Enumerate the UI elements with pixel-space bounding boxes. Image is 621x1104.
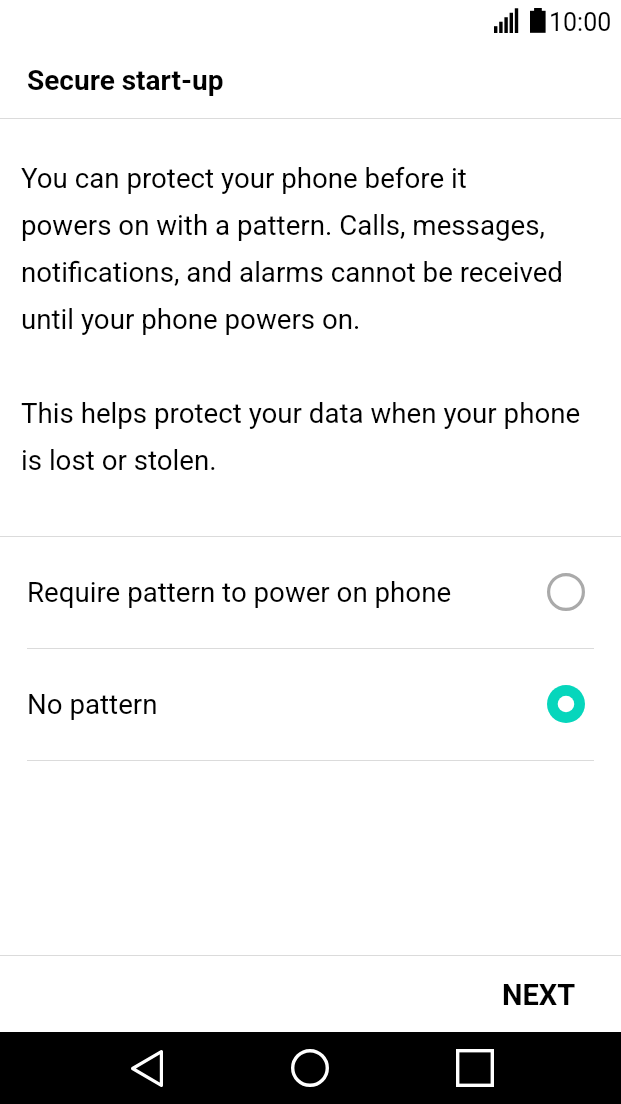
button[interactable]: No pattern bbox=[0, 649, 621, 760]
button[interactable]: NEXT bbox=[478, 963, 621, 1025]
staticText: 10:00 bbox=[549, 8, 612, 37]
button[interactable]: Require pattern to power on phone bbox=[0, 537, 621, 648]
staticText: You can protect your phone before it pow… bbox=[21, 151, 581, 480]
staticText: Require pattern to power on phone bbox=[27, 576, 548, 608]
button[interactable]: Recent apps bbox=[420, 1032, 530, 1104]
button[interactable]: Home bbox=[255, 1032, 365, 1104]
staticText: No pattern bbox=[27, 688, 548, 720]
button[interactable]: Back bbox=[91, 1032, 201, 1104]
staticText: NEXT bbox=[502, 978, 576, 1012]
staticText: Secure start-up bbox=[27, 64, 224, 97]
